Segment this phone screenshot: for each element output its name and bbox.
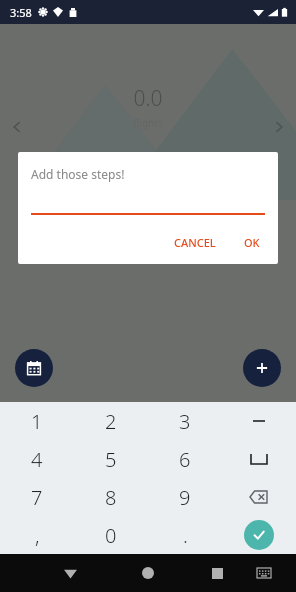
staticText: Add those steps! <box>31 166 125 182</box>
button[interactable]: del <box>222 478 296 516</box>
button[interactable]: 9 <box>148 478 222 516</box>
button[interactable]: 0 <box>74 516 148 554</box>
button[interactable]: 3 <box>148 402 222 440</box>
staticText: 6 <box>179 446 191 473</box>
staticText: 0.0 <box>133 84 163 113</box>
button[interactable]: Previous <box>8 118 26 136</box>
button[interactable]: 5 <box>74 440 148 478</box>
staticText: 1 <box>31 408 43 435</box>
button[interactable]: 8 <box>74 478 148 516</box>
staticText: flights <box>133 116 163 130</box>
button[interactable]: Back <box>57 560 83 586</box>
staticText: 8 <box>105 484 117 511</box>
button[interactable]: Switch keyboard <box>252 561 276 585</box>
staticText: 3:58 <box>10 5 32 20</box>
button[interactable]: space <box>222 440 296 478</box>
button[interactable]: 7 <box>0 478 74 516</box>
button[interactable]: Home <box>135 560 161 586</box>
staticText: . <box>183 522 188 549</box>
button[interactable]: 1 <box>0 402 74 440</box>
staticText: CANCEL <box>174 235 216 250</box>
staticText: 2 <box>105 408 117 435</box>
button[interactable]: 4 <box>0 440 74 478</box>
staticText: 5 <box>105 446 117 473</box>
button[interactable]: 6 <box>148 440 222 478</box>
staticText: 3 <box>179 408 191 435</box>
button[interactable]: CANCEL <box>168 231 222 254</box>
button[interactable]: OK <box>238 231 266 254</box>
staticText: 0 <box>105 522 117 549</box>
button[interactable]: Add <box>243 349 281 387</box>
staticText: 4 <box>31 446 43 473</box>
button[interactable]: , <box>0 516 74 554</box>
button[interactable]: Pick date <box>15 349 53 387</box>
button[interactable]: ok <box>222 516 296 554</box>
button[interactable]: . <box>148 516 222 554</box>
button[interactable]: Next <box>270 118 288 136</box>
staticText: , <box>35 522 40 549</box>
staticText: OK <box>244 235 260 250</box>
button[interactable]: 2 <box>74 402 148 440</box>
button[interactable]: minus <box>222 402 296 440</box>
button[interactable]: Recents <box>204 560 230 586</box>
staticText: 9 <box>179 484 191 511</box>
staticText: 7 <box>31 484 43 511</box>
